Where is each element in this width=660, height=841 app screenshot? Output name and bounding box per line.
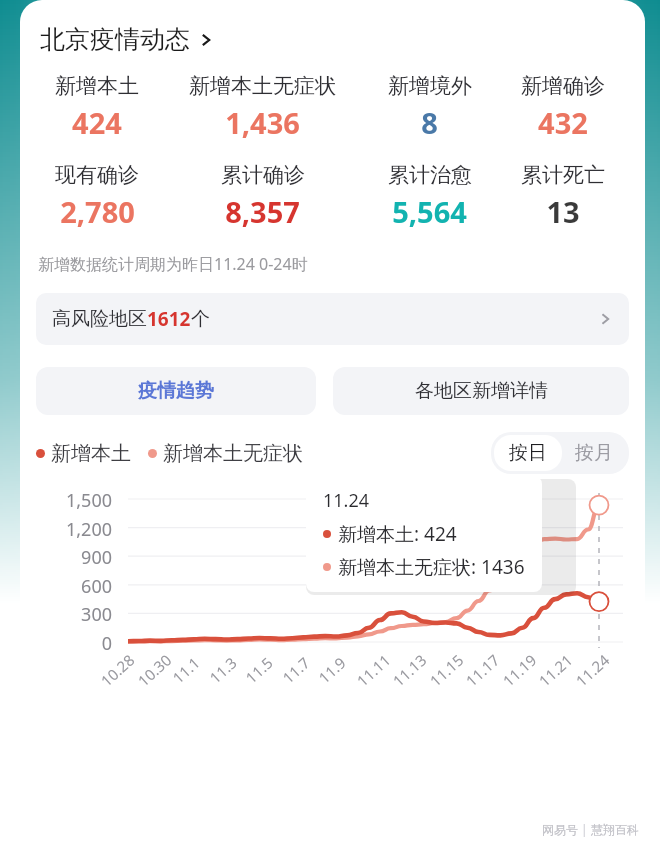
button[interactable]: 按月: [562, 435, 626, 471]
staticText: 1,500: [50, 488, 112, 513]
staticText: 11.7: [278, 652, 314, 687]
staticText: 个: [191, 307, 210, 331]
staticText: 新增本土无症状: [163, 441, 303, 466]
staticText: 北京疫情动态: [40, 24, 190, 55]
staticText: 累计确诊: [221, 162, 305, 188]
staticText: 11.1: [168, 652, 204, 687]
staticText: 11.24: [323, 488, 370, 513]
staticText: 2,780: [60, 192, 135, 231]
staticText: 新增境外: [388, 73, 472, 99]
staticText: 新增本土无症状: 1436: [338, 554, 525, 580]
staticText: 新增本土: 424: [338, 521, 457, 547]
staticText: 新增本土: [55, 73, 139, 99]
staticText: 10.28: [96, 649, 139, 690]
staticText: 1,436: [225, 103, 300, 142]
staticText: 新增本土: [51, 441, 131, 466]
button[interactable]: 疫情趋势: [36, 367, 316, 415]
staticText: 8,357: [225, 192, 300, 231]
button[interactable]: 北京疫情动态: [38, 22, 216, 57]
staticText: 11.11: [352, 649, 395, 690]
staticText: 新增本土无症状: [189, 73, 336, 99]
staticText: 11.13: [388, 649, 431, 690]
staticText: 各地区新增详情: [415, 379, 548, 403]
staticText: 11.5: [241, 652, 277, 687]
staticText: 900: [50, 545, 112, 570]
staticText: 0: [50, 631, 112, 656]
staticText: 300: [50, 602, 112, 627]
staticText: 现有确诊: [55, 162, 139, 188]
staticText: 432: [538, 103, 588, 142]
staticText: 慧翔百科: [591, 822, 639, 837]
staticText: 按日: [509, 441, 547, 465]
staticText: 累计死亡: [521, 162, 605, 188]
staticText: 11.3: [205, 652, 241, 687]
button[interactable]: 各地区新增详情: [333, 367, 629, 415]
staticText: 424: [72, 103, 122, 142]
staticText: 10.30: [133, 649, 176, 690]
staticText: 600: [50, 574, 112, 599]
staticText: 11.19: [498, 649, 541, 690]
staticText: 11.15: [425, 649, 468, 690]
staticText: 11.17: [461, 649, 504, 690]
staticText: 按月: [575, 441, 613, 465]
button[interactable]: 按日: [494, 435, 562, 471]
staticText: 新增数据统计周期为昨日11.24 0-24时: [38, 253, 308, 275]
staticText: |: [578, 821, 591, 837]
staticText: 11.9: [314, 652, 350, 687]
staticText: 11.21: [534, 649, 577, 690]
staticText: 网易号: [542, 822, 578, 837]
staticText: 1,200: [50, 517, 112, 542]
staticText: 8: [421, 103, 438, 142]
staticText: 新增确诊: [521, 73, 605, 99]
staticText: 11.24: [571, 649, 614, 690]
button[interactable]: 高风险地区: [36, 293, 629, 345]
staticText: 累计治愈: [388, 162, 472, 188]
staticText: 高风险地区: [52, 307, 147, 331]
staticText: 疫情趋势: [138, 379, 214, 403]
staticText: 1612: [147, 306, 191, 332]
staticText: 13: [546, 192, 580, 231]
staticText: 5,564: [392, 192, 467, 231]
